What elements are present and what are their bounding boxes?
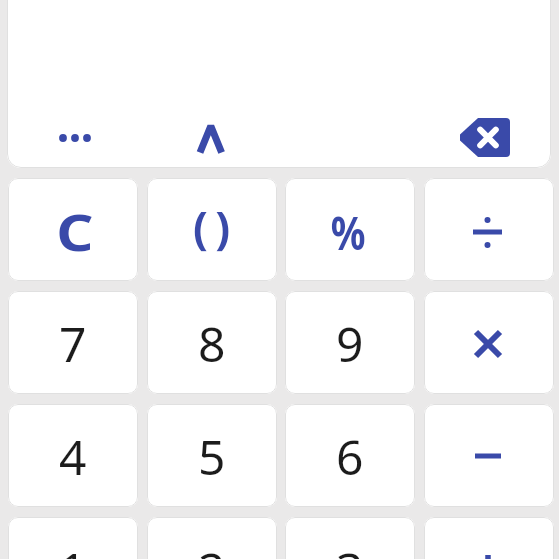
staticText: ( ) [193,197,229,257]
button[interactable] [424,178,554,281]
staticText: 6 [336,424,364,489]
button[interactable]: 4 [8,404,138,507]
staticText: 4 [59,424,87,489]
staticText: 9 [336,311,364,376]
button[interactable]: 6 [285,404,415,507]
staticText: 5 [198,424,226,489]
button[interactable] [424,291,554,394]
button[interactable]: C [8,178,138,281]
staticText: % [331,200,366,264]
button[interactable] [452,110,518,164]
staticText: 3 [336,537,364,559]
button[interactable] [424,517,554,559]
staticText: 8 [198,311,226,376]
staticText: 1 [59,537,87,559]
button[interactable]: % [285,178,415,281]
button[interactable]: 8 [147,291,277,394]
button[interactable]: 1 [8,517,138,559]
button[interactable]: ( ) [147,178,277,281]
button[interactable] [51,126,99,150]
staticText: 2 [198,537,226,559]
button[interactable]: 3 [285,517,415,559]
button[interactable] [190,116,232,160]
button[interactable] [424,404,554,507]
button[interactable]: 9 [285,291,415,394]
button[interactable]: 2 [147,517,277,559]
staticText: 7 [59,311,87,376]
button[interactable]: 5 [147,404,277,507]
button[interactable]: 7 [8,291,138,394]
staticText: C [56,198,95,266]
